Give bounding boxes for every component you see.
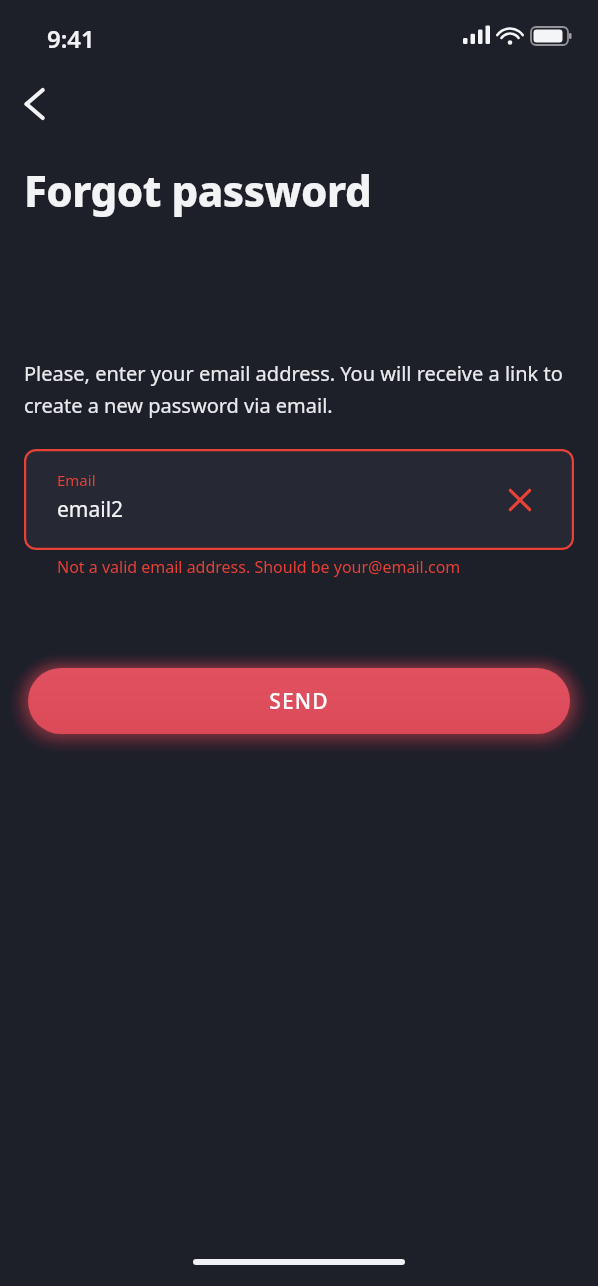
staticText: Forgot password xyxy=(24,162,372,219)
button[interactable]: Email xyxy=(24,449,574,550)
staticText: email2 xyxy=(57,495,124,524)
button[interactable]: Clear email xyxy=(498,478,542,522)
staticText: 9:41 xyxy=(47,22,95,55)
staticText: Email xyxy=(57,470,96,490)
staticText: Not a valid email address. Should be you… xyxy=(57,556,461,578)
button[interactable]: Back xyxy=(8,76,64,132)
button[interactable]: SEND xyxy=(28,668,570,734)
staticText: Please, enter your email address. You wi… xyxy=(24,360,564,419)
staticText: SEND xyxy=(269,687,329,716)
